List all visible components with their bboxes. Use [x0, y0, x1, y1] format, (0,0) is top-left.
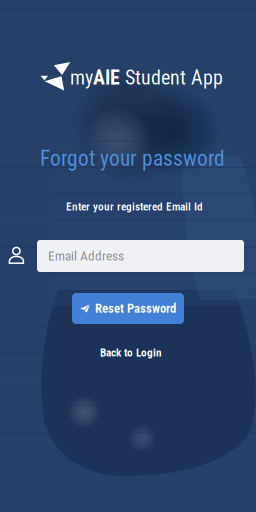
staticText: my: [70, 66, 93, 89]
staticText: Student App: [120, 66, 223, 89]
button[interactable]: Back to Login: [92, 342, 170, 363]
staticText: AIE: [93, 66, 120, 89]
staticText: Email Address: [48, 248, 124, 264]
staticText: Back to Login: [100, 346, 162, 359]
staticText: Enter your registered Email Id: [66, 200, 203, 213]
staticText: Reset Password: [95, 301, 176, 316]
button[interactable]: Reset Password: [72, 293, 184, 324]
staticText: Forgot your password: [40, 146, 225, 171]
